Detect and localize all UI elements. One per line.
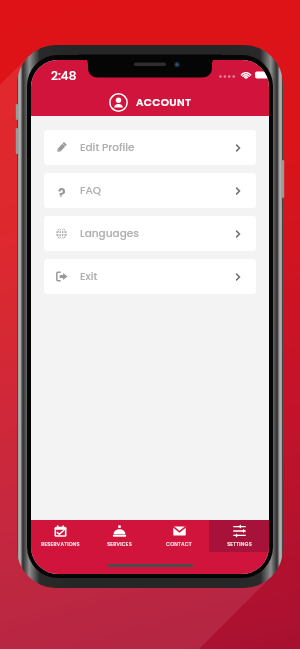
staticText: ACCOUNT bbox=[136, 95, 192, 110]
staticText: SERVICES bbox=[107, 541, 132, 548]
button[interactable]: Languages bbox=[44, 216, 256, 251]
staticText: CONTACT bbox=[166, 541, 192, 548]
button[interactable]: ACCOUNT bbox=[31, 91, 269, 113]
button[interactable]: SETTINGS bbox=[209, 520, 269, 552]
button[interactable]: ? bbox=[44, 173, 256, 208]
staticText: Edit Profile bbox=[80, 140, 135, 155]
staticText: RESERVATIONS bbox=[41, 541, 80, 548]
staticText: ? bbox=[58, 184, 66, 197]
button[interactable]: Exit bbox=[44, 259, 256, 294]
button[interactable]: CONTACT bbox=[149, 520, 209, 552]
staticText: 2:48 bbox=[51, 67, 77, 84]
button[interactable]: RESERVATIONS bbox=[31, 520, 90, 552]
button[interactable]: Edit Profile bbox=[44, 130, 256, 165]
button[interactable]: SERVICES bbox=[90, 520, 149, 552]
staticText: Languages bbox=[80, 226, 139, 241]
staticText: FAQ bbox=[80, 183, 101, 198]
staticText: Exit bbox=[80, 269, 98, 284]
staticText: SETTINGS bbox=[227, 541, 252, 548]
